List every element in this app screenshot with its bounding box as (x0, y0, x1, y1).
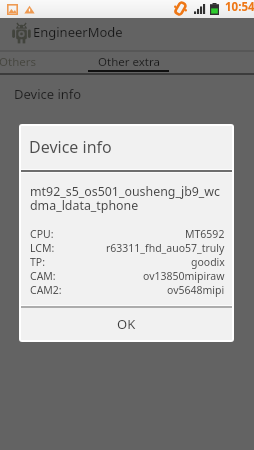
staticText: CAM2: (30, 283, 62, 297)
staticText: 10:54 (225, 0, 254, 15)
staticText: EngineerMode (33, 23, 123, 41)
staticText: Device info (14, 85, 82, 103)
staticText: ov5648mipi (167, 283, 225, 297)
staticText: Device info (29, 136, 112, 158)
staticText: CAM: (30, 269, 56, 283)
staticText: Others (0, 54, 36, 70)
staticText: TP: (30, 255, 46, 269)
staticText: MT6592 (185, 227, 225, 241)
button[interactable]: Device info (0, 79, 254, 109)
button[interactable]: Others (0, 51, 83, 72)
staticText: OK (117, 315, 136, 333)
staticText: ov13850mipiraw (143, 269, 225, 283)
staticText: LCM: (30, 241, 55, 255)
other: App icon (12, 23, 31, 44)
staticText: CPU: (30, 227, 54, 241)
staticText: Other extra (98, 54, 160, 70)
button[interactable]: App icon (0, 18, 254, 50)
staticText: r63311_fhd_auo57_truly (106, 241, 225, 255)
staticText: goodix (191, 255, 225, 269)
staticText: mt92_s5_os501_ousheng_jb9_wcdma_ldata_tp… (30, 183, 221, 214)
button[interactable]: Other extra (88, 51, 169, 72)
button[interactable]: OK (21, 308, 232, 340)
